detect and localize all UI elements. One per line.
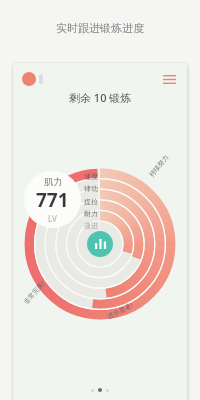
staticText: 提拉 xyxy=(84,197,98,206)
staticText: 律动 xyxy=(84,184,98,193)
button[interactable]: Statistics xyxy=(87,231,113,257)
staticText: 进步显著! xyxy=(105,300,134,321)
staticText: 771 xyxy=(36,187,69,213)
staticText: LV xyxy=(48,213,57,224)
staticText: 实时跟进锻炼进度 xyxy=(56,21,144,35)
button[interactable]: Logo xyxy=(22,72,36,86)
staticText: 耐力 xyxy=(84,209,98,218)
staticText: 持续努力 xyxy=(148,153,170,179)
staticText: 肌力 xyxy=(44,176,62,187)
staticText: 速度 xyxy=(84,172,98,181)
staticText: 非常完美! xyxy=(22,279,46,306)
staticText: 剩余 10 锻炼 xyxy=(69,90,132,105)
staticText: 递进 xyxy=(84,221,98,230)
button[interactable]: Menu xyxy=(157,67,181,91)
